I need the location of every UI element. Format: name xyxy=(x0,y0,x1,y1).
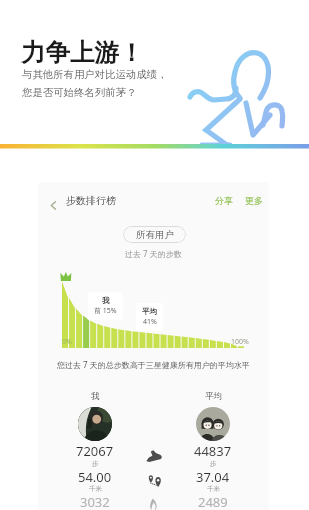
button[interactable]: 分享 xyxy=(215,195,233,206)
staticText: 您是否可始终名列前茅？ xyxy=(22,86,137,99)
staticText: 千米 xyxy=(207,485,220,493)
staticText: 72067 xyxy=(76,442,114,460)
staticText: 力争上游！ xyxy=(21,37,144,68)
button[interactable]: Back xyxy=(44,196,62,214)
button[interactable]: 步数排行榜 xyxy=(66,194,116,207)
button[interactable]: 更多 xyxy=(245,195,263,206)
staticText: 步 xyxy=(92,460,99,468)
staticText: 平均 xyxy=(205,391,222,402)
staticText: 平均 xyxy=(142,307,157,316)
staticText: 2489 xyxy=(198,493,228,510)
staticText: 您过去 7 天的总步数高于三星健康所有用户的平均水平 xyxy=(57,359,250,370)
staticText: 前 15% xyxy=(94,306,117,316)
staticText: 千米 xyxy=(89,485,102,493)
staticText: 41% xyxy=(143,317,157,327)
staticText: 37.04 xyxy=(196,468,230,486)
staticText: 3032 xyxy=(80,493,110,510)
staticText: 54.00 xyxy=(78,468,112,486)
staticText: 所有用户 xyxy=(136,229,174,241)
staticText: 我 xyxy=(102,296,110,305)
staticText: 44837 xyxy=(194,442,232,460)
staticText: 过去 7 天的步数 xyxy=(125,248,182,259)
staticText: 0% xyxy=(62,337,72,347)
staticText: 与其他所有用户对比运动成绩， xyxy=(22,68,168,81)
staticText: 步 xyxy=(210,460,217,468)
button[interactable]: 所有用户 xyxy=(123,226,186,243)
staticText: 我 xyxy=(91,391,100,402)
staticText: 100% xyxy=(231,337,249,347)
